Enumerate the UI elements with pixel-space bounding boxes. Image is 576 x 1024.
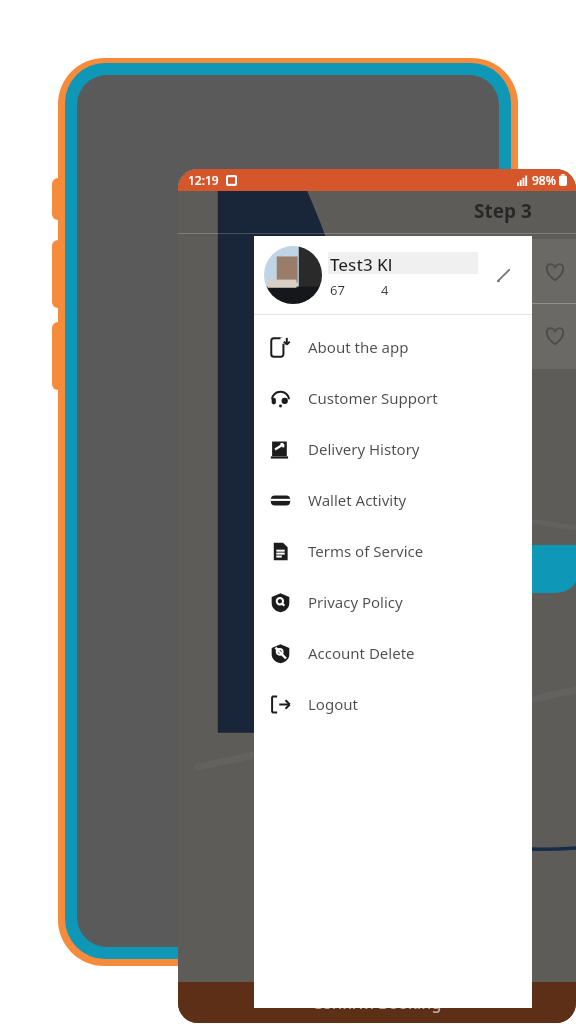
staticText: Confirm Booking [312,992,442,1014]
button[interactable]: Account Delete [254,627,532,678]
button[interactable]: Test3 Kl [254,236,532,314]
staticText: Test3 Kl [330,253,393,276]
button[interactable]: Customer Support [254,372,532,423]
staticText: Step 3 [474,198,532,224]
button[interactable]: Terms of Service [254,525,532,576]
staticText: Delivery History [308,439,420,459]
button[interactable]: Wallet Activity [254,474,532,525]
staticText: Terms of Service [308,541,424,561]
button[interactable]: Confirm Booking [178,982,576,1023]
staticText: 67 [330,281,345,299]
button[interactable]: Delivery History [254,423,532,474]
staticText: 4 [381,281,389,299]
button[interactable]: Logout [254,678,532,729]
staticText: Wallet Activity [308,490,407,510]
button[interactable]: About the app [254,321,532,372]
button[interactable]: Edit profile [486,258,520,292]
staticText: 12:19 [188,172,219,188]
staticText: About the app [308,337,409,357]
staticText: 98% [532,172,556,188]
staticText: Privacy Policy [308,592,403,612]
staticText: Logout [308,694,358,714]
staticText: Account Delete [308,643,415,663]
staticText: Customer Support [308,388,438,408]
button[interactable]: Privacy Policy [254,576,532,627]
